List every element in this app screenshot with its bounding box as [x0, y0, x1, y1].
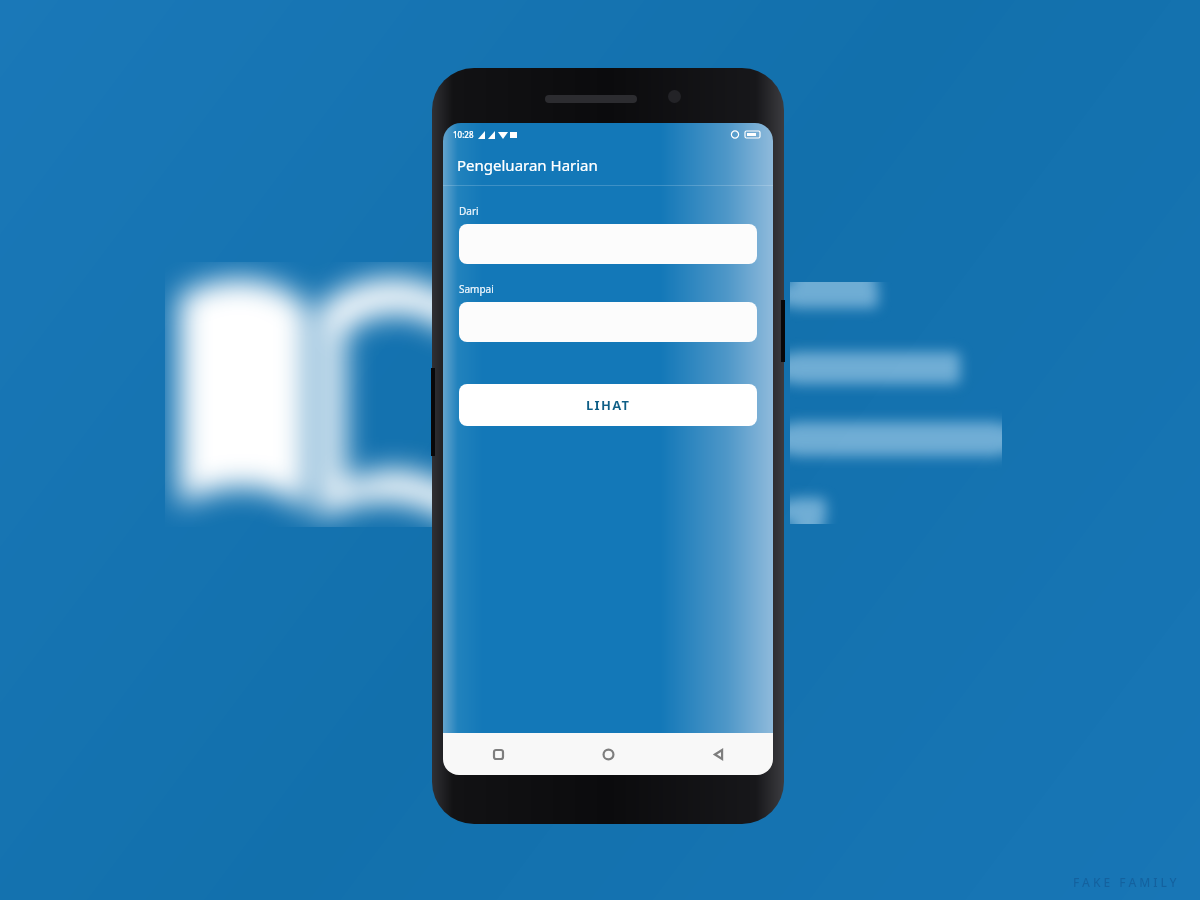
- staticText: LIHAT: [586, 396, 631, 414]
- button[interactable]: Recent apps: [443, 733, 553, 775]
- button[interactable]: Home: [553, 733, 663, 775]
- staticText: Pengeluaran Harian: [457, 155, 598, 175]
- button[interactable]: LIHAT: [459, 384, 757, 426]
- staticText: Dari: [459, 204, 479, 218]
- staticText: FAKE FAMILY: [1073, 874, 1180, 890]
- button[interactable]: Date field: [459, 224, 757, 264]
- staticText: Sampai: [459, 282, 494, 296]
- button[interactable]: Back: [663, 733, 773, 775]
- button[interactable]: Date field: [459, 302, 757, 342]
- staticText: 10:28: [453, 129, 474, 140]
